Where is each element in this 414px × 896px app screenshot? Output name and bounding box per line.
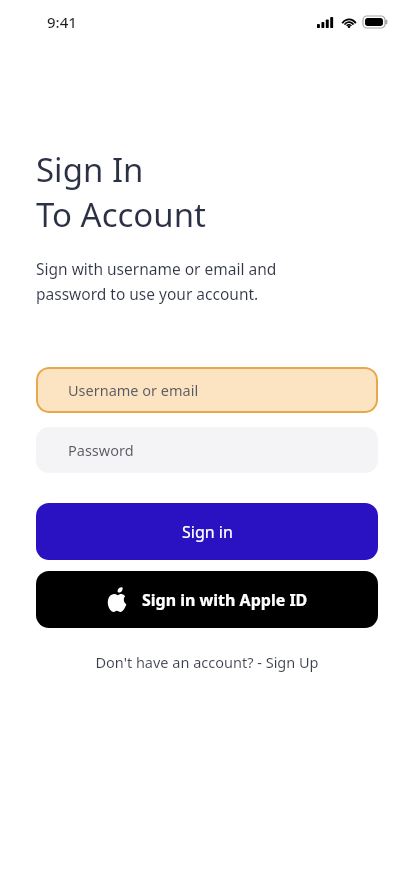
staticText: Sign in [182,521,233,543]
staticText: Sign In [36,147,144,192]
button[interactable]: Password [36,427,378,473]
staticText: 9:41 [47,12,77,32]
staticText: Don't have an account? - Sign Up [95,652,319,672]
other: Apple [107,587,128,612]
staticText: Sign with username or email and password… [36,258,277,305]
button[interactable]: Sign in [36,503,378,560]
staticText: Sign in with Apple ID [142,589,308,611]
button[interactable]: Apple [36,571,378,628]
staticText: To Account [36,192,207,237]
staticText: Username or email [68,380,199,400]
staticText: Password [68,440,134,460]
button[interactable]: Don't have an account? - Sign Up [0,652,414,672]
button[interactable]: Username or email [36,367,378,413]
